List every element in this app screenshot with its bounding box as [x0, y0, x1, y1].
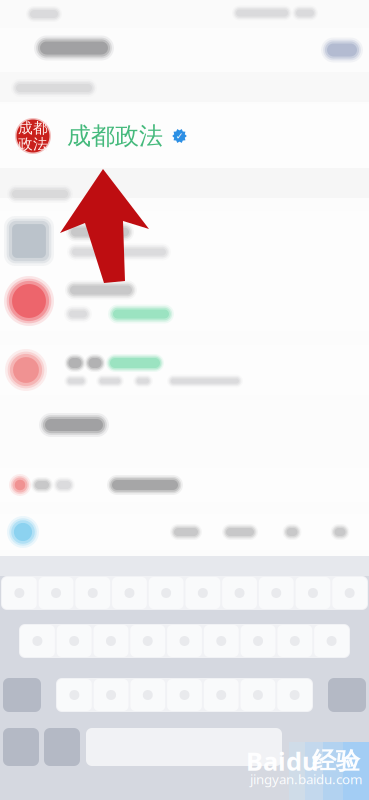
staticText: 成: [18, 119, 33, 137]
staticText: 成都政法: [67, 121, 163, 151]
button[interactable]: [0, 271, 369, 331]
button[interactable]: [0, 514, 369, 550]
staticText: 都: [33, 119, 48, 137]
button[interactable]: [0, 468, 369, 502]
staticText: 政: [18, 135, 33, 153]
button[interactable]: Search: [314, 35, 369, 65]
staticText: 经验: [312, 746, 360, 776]
button[interactable]: [0, 211, 369, 271]
button[interactable]: [0, 345, 369, 395]
staticText: jingyan.baidu.com: [250, 770, 362, 788]
staticText: ✓: [175, 131, 183, 141]
staticText: Baidu: [246, 744, 318, 778]
staticText: 法: [33, 135, 48, 153]
button[interactable]: 成: [0, 104, 369, 168]
button[interactable]: [24, 408, 124, 442]
button[interactable]: [19, 32, 129, 64]
